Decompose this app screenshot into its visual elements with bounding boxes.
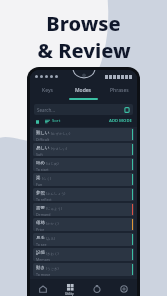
button[interactable]: 難しい <box>33 128 134 141</box>
staticText: 価格 <box>36 220 45 226</box>
staticText: (やさしい) <box>51 146 67 151</box>
button[interactable]: Timer <box>83 279 110 296</box>
staticText: Demand <box>36 212 51 216</box>
button[interactable]: Search... <box>34 104 133 115</box>
button[interactable]: 始め <box>33 158 134 171</box>
button[interactable]: 記憶 <box>33 248 134 261</box>
staticText: (うごき) <box>46 266 59 271</box>
button[interactable]: 参照 <box>33 188 134 201</box>
staticText: ADD MODE <box>109 118 132 124</box>
staticText: Memory <box>36 257 51 261</box>
button[interactable]: 見る <box>33 233 134 246</box>
staticText: (はじめ) <box>46 161 59 166</box>
staticText: Fun <box>36 182 43 186</box>
button[interactable]: 需要 <box>33 203 134 216</box>
staticText: Utility <box>65 292 74 296</box>
button[interactable]: 楽 <box>33 173 134 186</box>
button[interactable]: Phrases <box>101 83 137 98</box>
staticText: 始め <box>36 160 45 166</box>
staticText: Sort <box>52 118 61 124</box>
button[interactable]: 価格 <box>33 218 134 231</box>
staticText: (かかく) <box>46 221 59 226</box>
staticText: Price <box>36 227 45 231</box>
staticText: (らく) <box>42 176 51 181</box>
staticText: 見る <box>36 235 45 241</box>
staticText: Soft <box>36 152 43 156</box>
staticText: To reflect <box>36 197 52 201</box>
staticText: & Review <box>37 37 131 64</box>
button[interactable]: Settings <box>110 279 137 296</box>
staticText: 動き <box>36 265 45 271</box>
staticText: Difficult <box>36 137 50 141</box>
staticText: Modes <box>75 87 92 94</box>
button[interactable]: Modes <box>65 83 101 98</box>
staticText: (さんしょう) <box>46 191 66 196</box>
button[interactable]: 易しい <box>33 143 134 156</box>
staticText: 楽 <box>36 175 41 181</box>
staticText: 難しい <box>36 130 50 136</box>
other: Delete <box>35 119 40 124</box>
staticText: To start <box>36 167 49 171</box>
staticText: To see <box>36 242 47 246</box>
staticText: 易しい <box>36 145 50 151</box>
staticText: (きおく) <box>46 251 59 256</box>
staticText: Search... <box>37 107 55 113</box>
staticText: (じゅよう) <box>46 206 62 211</box>
staticText: Keys <box>42 87 54 94</box>
button[interactable]: Home <box>30 279 56 296</box>
button[interactable]: 動き <box>33 263 134 276</box>
other: Filter <box>124 107 130 113</box>
staticText: Browse <box>46 10 121 37</box>
staticText: To move <box>36 272 51 276</box>
button[interactable]: ADD MODE <box>109 118 132 124</box>
staticText: Phrases <box>110 87 129 94</box>
staticText: 需要 <box>36 205 45 211</box>
staticText: 記憶 <box>36 250 45 256</box>
staticText: (むずかしい) <box>51 131 71 136</box>
button[interactable]: Utility <box>56 279 83 296</box>
staticText: (みる) <box>46 236 55 241</box>
staticText: 参照 <box>36 190 45 196</box>
button[interactable]: Keys <box>30 83 65 98</box>
